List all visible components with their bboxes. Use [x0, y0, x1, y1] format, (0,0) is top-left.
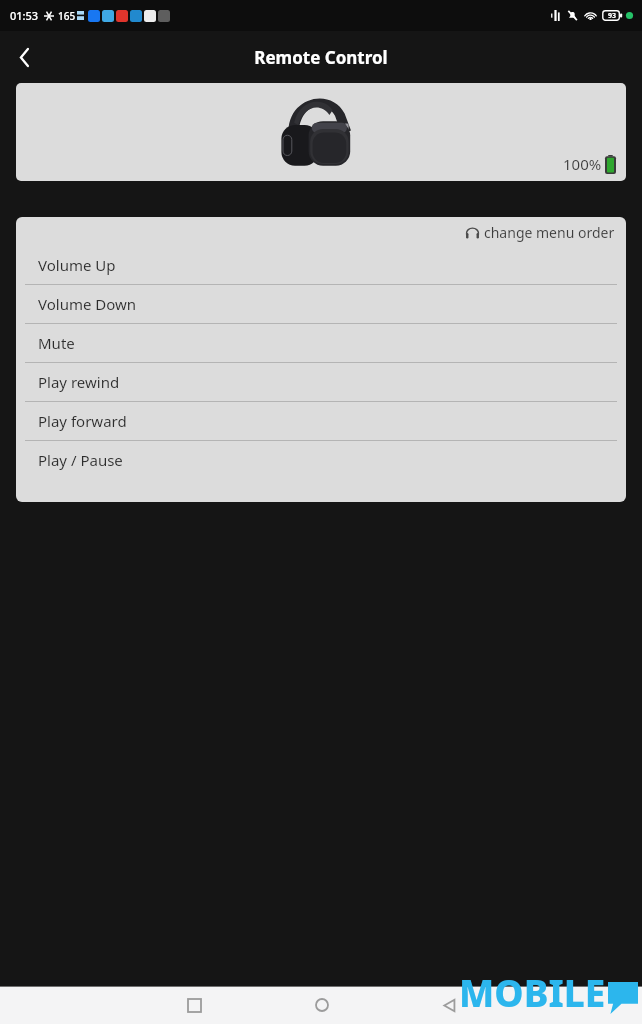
- staticText: MOBILE: [459, 967, 606, 1017]
- staticText: 01:53: [10, 8, 39, 23]
- button[interactable]: 100%: [16, 83, 626, 181]
- button[interactable]: Volume Down: [16, 285, 626, 323]
- staticText: 93: [608, 11, 617, 21]
- button[interactable]: Recents: [175, 986, 213, 1024]
- button[interactable]: change menu order: [465, 223, 615, 242]
- staticText: change menu order: [484, 223, 615, 242]
- button[interactable]: Play rewind: [16, 363, 626, 401]
- staticText: 165: [58, 9, 76, 23]
- staticText: Mute: [38, 333, 75, 353]
- button[interactable]: Play / Pause: [16, 441, 626, 479]
- staticText: Play / Pause: [38, 450, 123, 470]
- button[interactable]: Home: [303, 986, 341, 1024]
- button[interactable]: Volume Up: [16, 246, 626, 284]
- staticText: Play forward: [38, 411, 127, 431]
- button[interactable]: Back: [5, 38, 43, 76]
- staticText: Volume Down: [38, 294, 137, 314]
- staticText: Remote Control: [254, 46, 388, 69]
- button[interactable]: Back: [430, 986, 468, 1024]
- button[interactable]: Play forward: [16, 402, 626, 440]
- staticText: Play rewind: [38, 372, 120, 392]
- staticText: Volume Up: [38, 255, 116, 275]
- button[interactable]: Mute: [16, 324, 626, 362]
- staticText: 100%: [563, 154, 602, 174]
